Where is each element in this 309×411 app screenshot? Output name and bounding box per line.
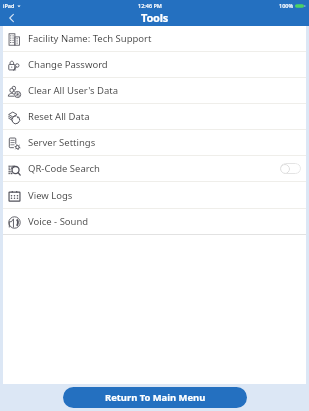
button[interactable]: Back [0, 11, 22, 26]
button[interactable]: QR-Code Search toggle [280, 163, 301, 174]
button[interactable]: Facility Name: Tech Support [3, 26, 306, 51]
staticText: View Logs [28, 189, 73, 202]
staticText: Change Password [28, 58, 108, 71]
button[interactable]: Voice - Sound [3, 209, 306, 234]
staticText: Clear All User's Data [28, 84, 119, 97]
button[interactable]: Change Password [3, 52, 306, 77]
staticText: 100% [279, 2, 294, 9]
button[interactable]: Return To Main Menu [63, 387, 247, 408]
staticText: Voice - Sound [28, 215, 89, 228]
button[interactable]: QR-Code Search [3, 156, 306, 181]
staticText: QR-Code Search [28, 162, 100, 175]
staticText: Facility Name: Tech Support [28, 32, 152, 45]
button[interactable]: Clear All User's Data [3, 78, 306, 103]
staticText: Reset All Data [28, 110, 90, 123]
button[interactable]: View Logs [3, 183, 306, 208]
staticText: Tools [141, 10, 169, 25]
staticText: iPad [3, 2, 15, 9]
staticText: Return To Main Menu [105, 391, 206, 404]
button[interactable]: Reset All Data [3, 104, 306, 129]
staticText: Server Settings [28, 136, 96, 149]
staticText: 12:46 PM [138, 2, 162, 9]
button[interactable]: Server Settings [3, 130, 306, 155]
